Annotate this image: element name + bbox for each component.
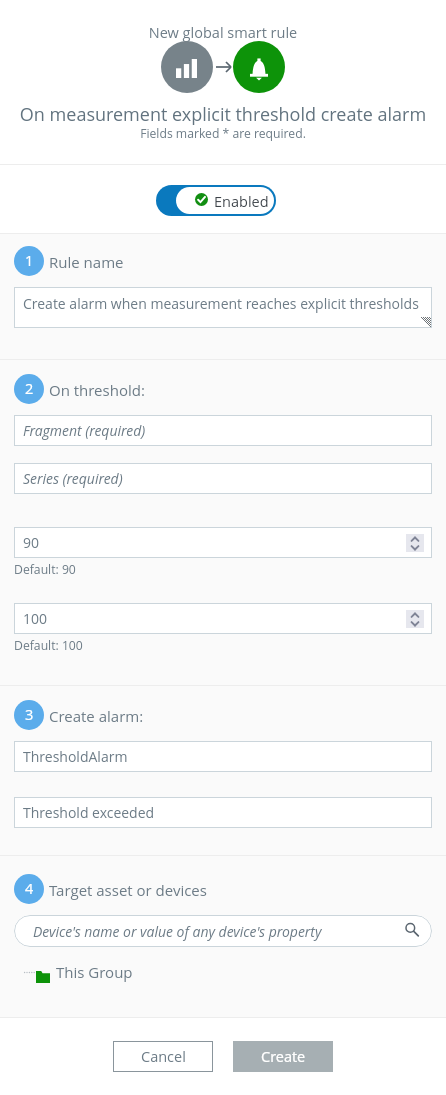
staticText: Cancel <box>141 1047 186 1067</box>
button[interactable]: Cancel <box>113 1041 213 1072</box>
other: Alarm <box>233 41 285 93</box>
button[interactable]: This Group <box>36 962 133 982</box>
staticText: This Group <box>56 962 133 982</box>
staticText: Threshold exceeded <box>23 803 155 822</box>
staticText: 1 <box>25 251 34 271</box>
button[interactable]: Fragment (required) <box>14 415 432 446</box>
staticText: Create alarm: <box>49 706 144 726</box>
staticText: Create alarm when measurement reaches ex… <box>23 294 419 313</box>
other: Increment or decrement <box>406 610 424 628</box>
button[interactable]: 90 <box>14 527 432 558</box>
staticText: 3 <box>25 705 34 725</box>
staticText: Fragment (required) <box>23 421 146 440</box>
other: Measurement <box>161 41 213 93</box>
staticText: Device's name or value of any device's p… <box>33 922 322 941</box>
button[interactable]: Enabled <box>156 185 276 216</box>
button[interactable]: 100 <box>14 603 432 634</box>
staticText: 2 <box>25 379 34 399</box>
staticText: 90 <box>23 533 40 552</box>
staticText: 4 <box>25 879 34 899</box>
staticText: Default: 100 <box>14 637 83 654</box>
other: Increment or decrement <box>406 534 424 552</box>
button[interactable]: ThresholdAlarm <box>14 741 432 772</box>
button[interactable]: Series (required) <box>14 463 432 494</box>
staticText: Rule name <box>49 252 124 272</box>
staticText: On threshold: <box>49 380 145 400</box>
staticText: Create <box>261 1047 306 1067</box>
staticText: Enabled <box>214 192 269 212</box>
button[interactable]: Create <box>233 1041 333 1072</box>
other: Search <box>405 923 419 937</box>
staticText: Series (required) <box>23 469 123 488</box>
staticText: Target asset or devices <box>49 880 207 900</box>
button[interactable]: Device's name or value of any device's p… <box>14 915 432 947</box>
staticText: Default: 90 <box>14 561 76 578</box>
staticText: Fields marked * are required. <box>0 125 446 142</box>
staticText: On measurement explicit threshold create… <box>0 102 446 127</box>
staticText: New global smart rule <box>0 23 446 43</box>
button[interactable]: Create alarm when measurement reaches ex… <box>14 287 432 328</box>
staticText: 100 <box>23 609 48 628</box>
button[interactable]: Threshold exceeded <box>14 797 432 828</box>
staticText: ThresholdAlarm <box>23 747 128 766</box>
